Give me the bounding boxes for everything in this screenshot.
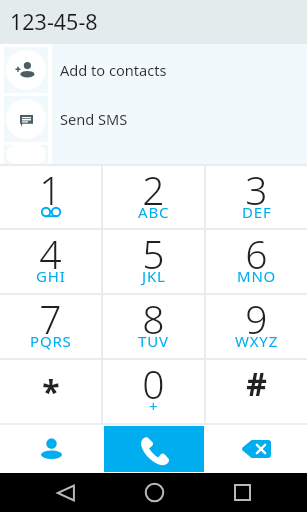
button[interactable]: Add to contacts	[0, 47, 307, 93]
button[interactable]: Call	[104, 426, 204, 472]
staticText: 2	[142, 163, 165, 216]
button[interactable]: 0	[103, 360, 204, 423]
staticText: WXYZ	[235, 331, 279, 351]
staticText: #	[246, 362, 267, 406]
staticText: 8	[142, 292, 165, 345]
staticText: Add to contacts	[60, 60, 167, 80]
button[interactable]: 1	[0, 166, 101, 228]
staticText: 5	[142, 227, 165, 280]
button[interactable]: #	[206, 360, 307, 423]
staticText: DEF	[242, 202, 272, 222]
staticText: TUV	[138, 331, 169, 351]
button[interactable]: Home	[110, 473, 198, 512]
staticText: 0	[142, 357, 165, 410]
staticText: 1	[39, 163, 62, 216]
button[interactable]: 4	[0, 230, 101, 293]
staticText: 6	[245, 227, 268, 280]
button[interactable]: Send SMS	[0, 96, 307, 142]
button[interactable]: Recents	[198, 473, 286, 512]
staticText: ABC	[138, 202, 170, 222]
button[interactable]: *	[0, 360, 101, 423]
button[interactable]: 5	[103, 230, 204, 293]
staticText: 4	[39, 227, 62, 280]
button[interactable]: 7	[0, 295, 101, 358]
staticText: MNO	[237, 266, 277, 286]
staticText: 123-45-8	[10, 7, 98, 36]
button[interactable]: 3	[206, 166, 307, 228]
staticText: PQRS	[30, 331, 72, 351]
button[interactable]: Back	[21, 473, 110, 512]
staticText: GHI	[36, 266, 66, 286]
button[interactable]: 9	[206, 295, 307, 358]
staticText: Send SMS	[60, 109, 128, 129]
staticText: 9	[245, 292, 268, 345]
button[interactable]: 8	[103, 295, 204, 358]
staticText: 7	[39, 292, 62, 345]
staticText: +	[149, 396, 159, 416]
staticText: 3	[245, 163, 268, 216]
button[interactable]: 2	[103, 166, 204, 228]
button[interactable]: 6	[206, 230, 307, 293]
staticText: JKL	[142, 266, 166, 286]
button[interactable]: Contacts	[0, 425, 103, 473]
button[interactable]	[0, 145, 307, 164]
button[interactable]: Backspace	[205, 425, 307, 473]
staticText: *	[42, 370, 60, 414]
